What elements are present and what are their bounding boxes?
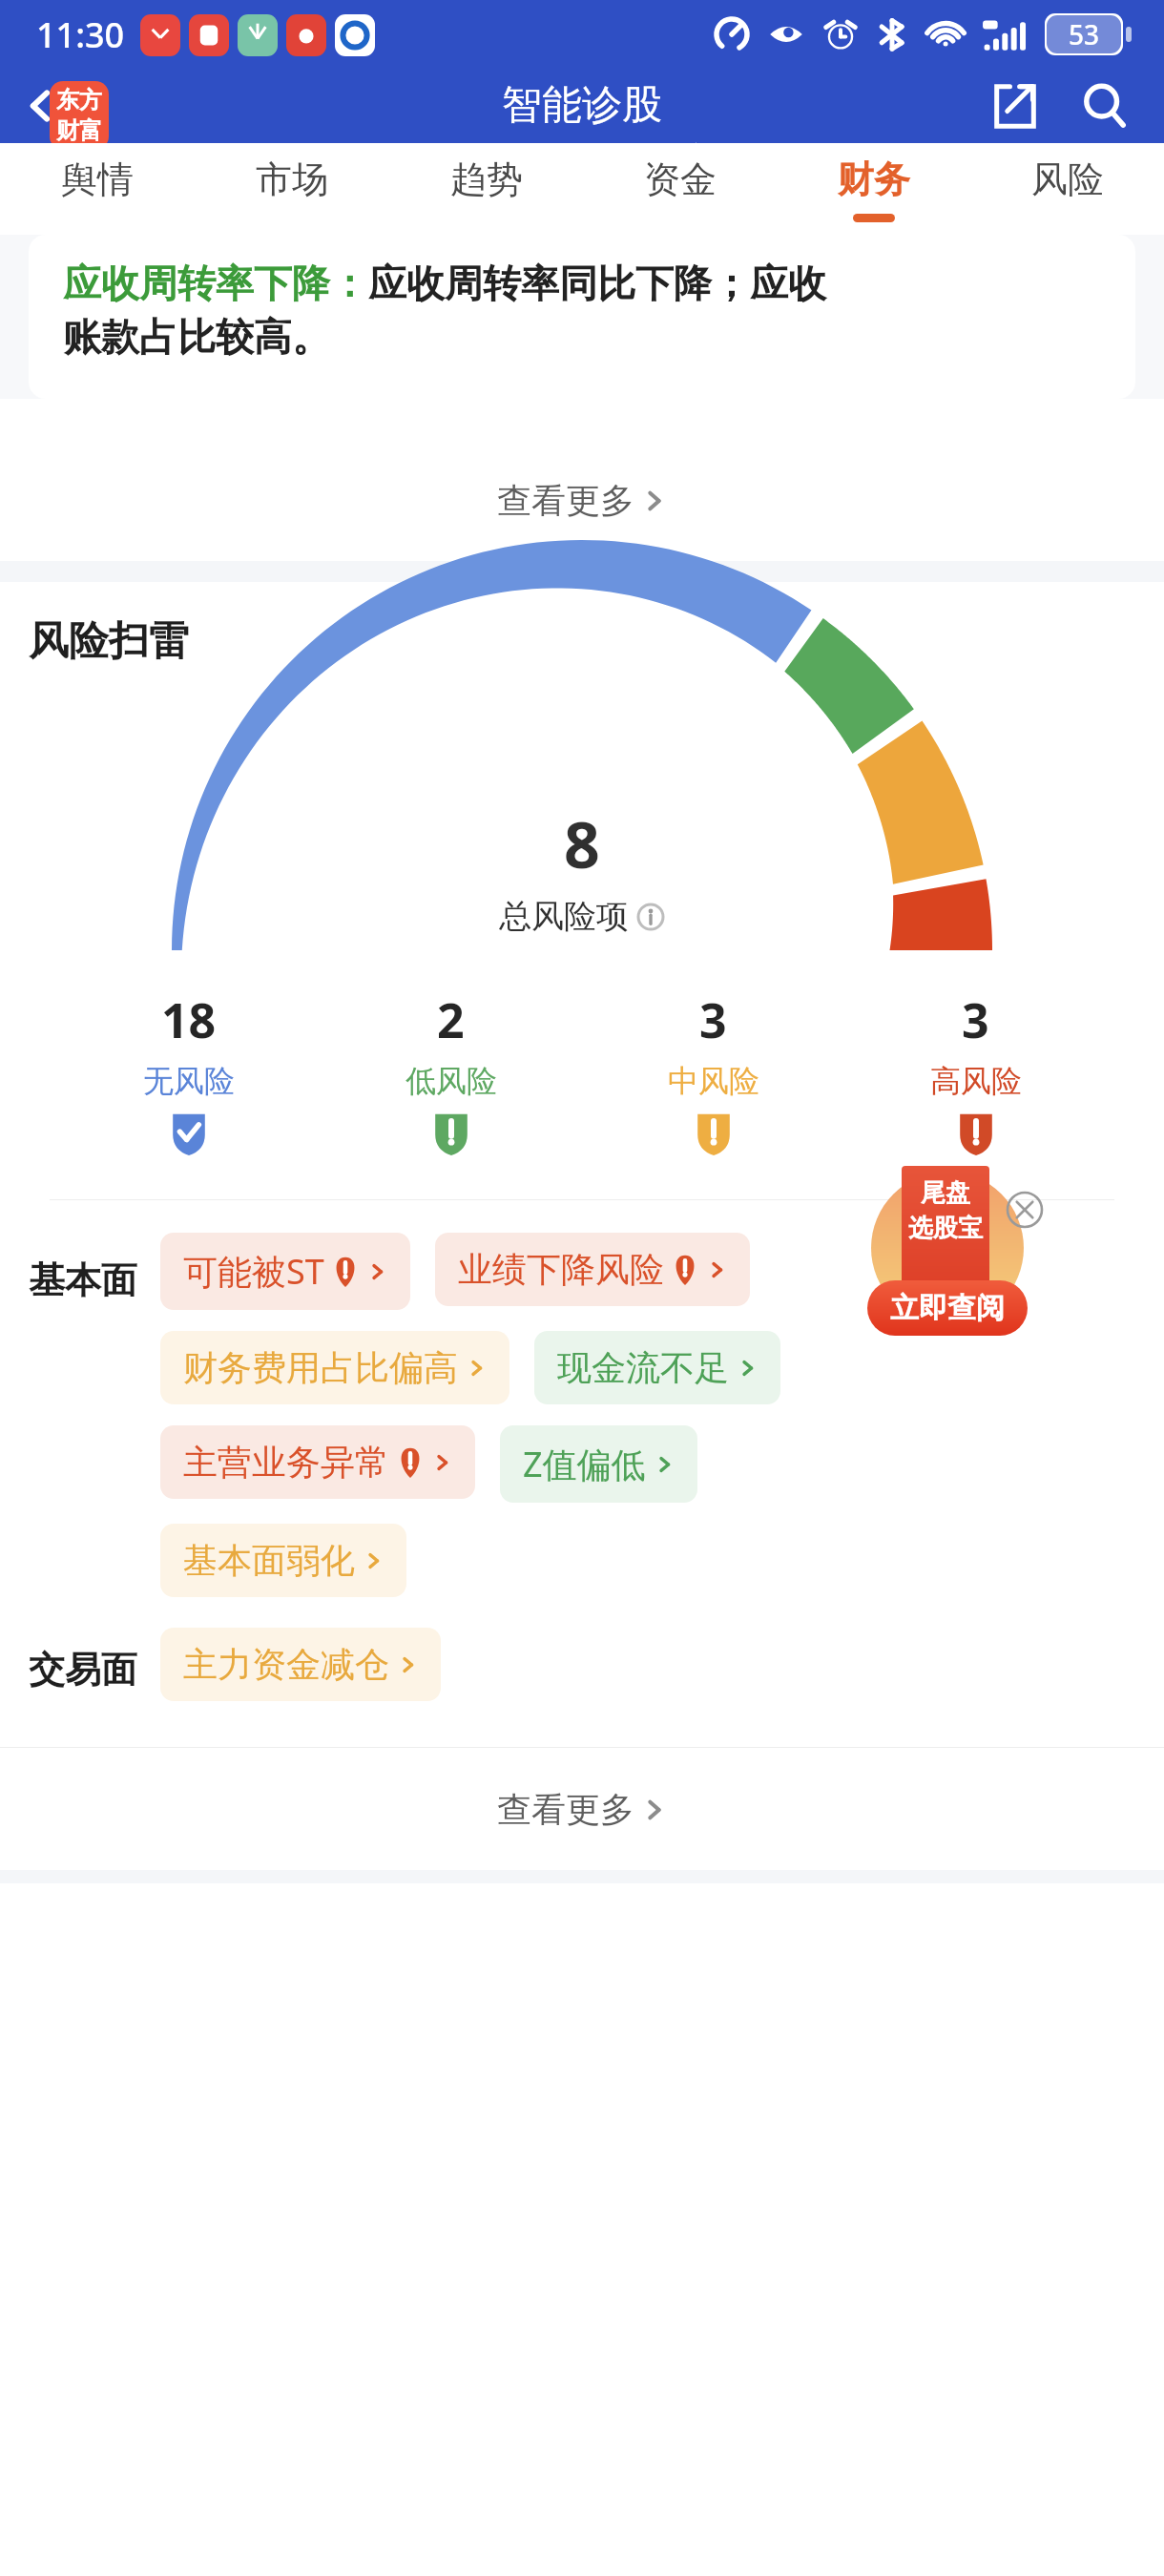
staticText: 市场 [256,156,328,202]
staticText: 无风险 [143,1062,235,1100]
staticText: 主营业务异常 [183,1441,389,1484]
button[interactable]: 资金 [583,143,777,235]
staticText: 主力资金减仓 [183,1643,389,1686]
button[interactable]: Close ad [1006,1191,1044,1229]
button[interactable]: 3 [844,987,1107,1155]
button[interactable]: 立即查阅 [867,1280,1028,1336]
staticText: 总风险项 [499,896,629,937]
staticText: 选股宝 [908,1213,983,1244]
staticText: 基本面 [29,1257,137,1303]
button[interactable]: 财务 [777,143,970,235]
button[interactable]: 现金流不足 [534,1331,780,1404]
button[interactable]: 舆情 [0,143,195,235]
button[interactable]: 市场 [195,143,389,235]
staticText: 3 [699,987,727,1052]
staticText: 账款占比较高。 [63,313,330,361]
staticText: 18 [161,987,217,1052]
button[interactable]: Search [1069,70,1141,142]
staticText: 资金 [644,156,717,202]
staticText: 2 [437,987,465,1052]
staticText: 业绩下降风险 [458,1248,664,1291]
staticText: 舆情 [61,156,134,202]
button[interactable]: 查看更多 [0,439,1164,561]
staticText: 2026-01-30 17:00更新 [447,136,717,155]
staticText: 交易面 [29,1647,137,1693]
button[interactable]: 18 [57,987,320,1155]
button[interactable]: 2 [320,987,582,1155]
staticText: 11:30 [36,11,125,58]
button[interactable]: Info [636,903,665,931]
button[interactable]: 风险 [970,143,1164,235]
button[interactable]: 主营业务异常 [160,1425,475,1499]
button[interactable]: 可能被ST [160,1233,410,1310]
staticText: 8 [564,800,600,886]
staticText: 风险 [1031,156,1104,202]
button[interactable]: 3 [582,987,844,1155]
staticText: 查看更多 [497,479,634,522]
staticText: 应收周转率同比下降；应收 [368,260,826,307]
staticText: 风险扫雷 [29,616,189,667]
staticText: Z值偏低 [523,1441,646,1487]
staticText: 3 [962,987,989,1052]
staticText: 趋势 [450,156,523,202]
button[interactable]: 业绩下降风险 [435,1233,750,1306]
staticText: 财务 [838,156,910,202]
button[interactable]: 趋势 [389,143,583,235]
button[interactable]: 主力资金减仓 [160,1628,441,1701]
staticText: 尾盘 [921,1177,970,1209]
button[interactable]: Z值偏低 [500,1425,697,1503]
button[interactable]: 查看更多 [0,1748,1164,1870]
button[interactable]: 基本面弱化 [160,1524,406,1597]
staticText: 高风险 [930,1062,1022,1100]
staticText: 可能被ST [183,1248,324,1295]
button[interactable]: 应收周转率下降： [29,235,1135,399]
staticText: 应收周转率下降： [63,260,368,307]
staticText: 中风险 [668,1062,759,1100]
button[interactable]: 财务费用占比偏高 [160,1331,509,1404]
staticText: 财富 [56,116,102,145]
staticText: 立即查阅 [890,1290,1005,1326]
button[interactable]: Promotion [871,1172,1024,1324]
staticText: 财务费用占比偏高 [183,1346,458,1389]
staticText: 现金流不足 [557,1346,729,1389]
staticText: 东方 [56,86,102,114]
button[interactable]: East Money [50,81,109,150]
staticText: 查看更多 [497,1788,634,1831]
staticText: 基本面弱化 [183,1539,355,1582]
button[interactable]: Share [979,70,1051,142]
staticText: 低风险 [405,1062,497,1100]
staticText: 53 [1069,16,1100,52]
button[interactable]: Back [11,76,71,135]
staticText: 智能诊股 [502,80,662,131]
